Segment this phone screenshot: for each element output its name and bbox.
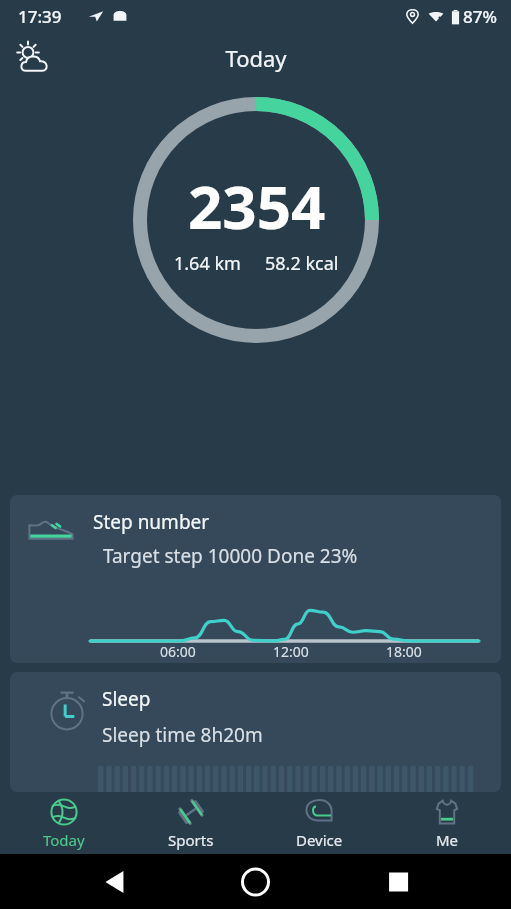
staticText: 18:00 xyxy=(386,642,422,661)
button[interactable]: Device xyxy=(255,792,383,854)
staticText: Today xyxy=(43,830,85,850)
staticText: Step number xyxy=(93,509,210,535)
staticText: 12:00 xyxy=(273,642,309,661)
button[interactable]: Sleep xyxy=(10,672,501,792)
staticText: 2354 xyxy=(188,165,326,247)
staticText: 06:00 xyxy=(160,642,196,661)
staticText: Sleep time 8h20m xyxy=(102,722,263,748)
staticText: Sleep xyxy=(102,686,151,712)
staticText: Target step 10000 Done 23% xyxy=(93,543,358,569)
button[interactable]: Today xyxy=(0,792,127,854)
staticText: 87% xyxy=(463,5,497,28)
staticText: Me xyxy=(436,830,459,850)
staticText: Sports xyxy=(168,830,214,850)
button[interactable]: Step number xyxy=(10,495,501,663)
staticText: Device xyxy=(296,830,343,850)
staticText: Today xyxy=(225,43,287,73)
button[interactable]: Me xyxy=(383,792,511,854)
staticText: 58.2 kcal xyxy=(265,251,339,276)
button[interactable]: Sports xyxy=(127,792,255,854)
button[interactable]: Weather xyxy=(8,34,56,82)
staticText: 1.64 km xyxy=(174,251,241,276)
staticText: 17:39 xyxy=(18,5,62,28)
